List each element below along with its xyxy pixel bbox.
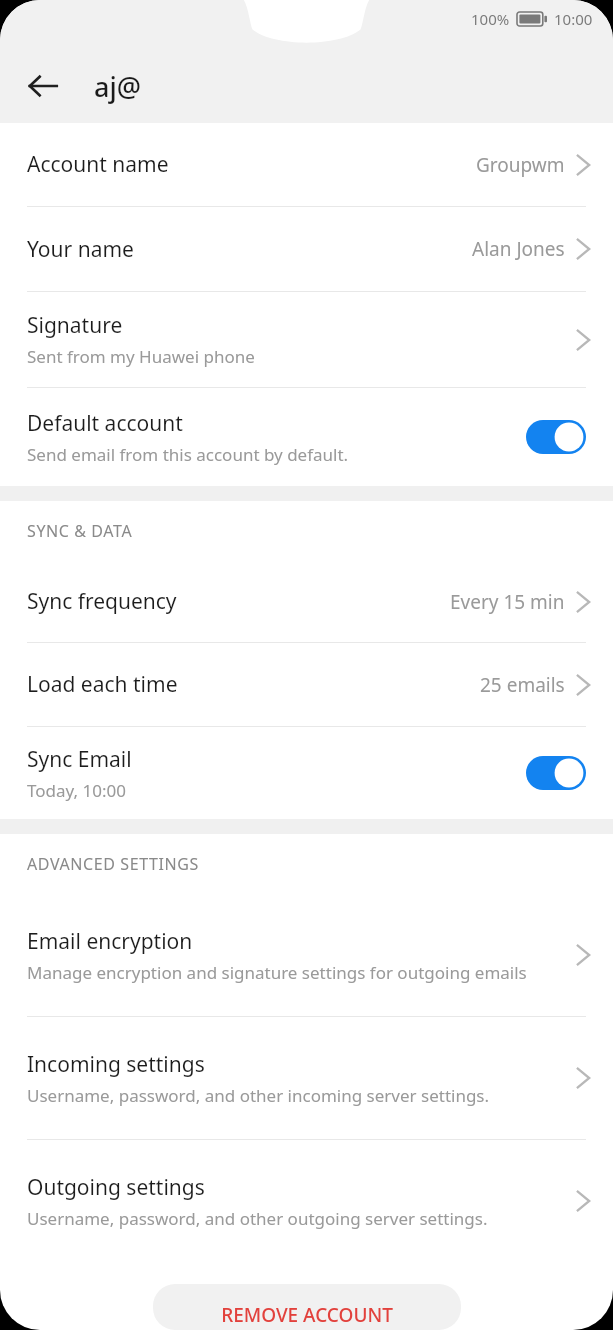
staticText: 100% bbox=[471, 9, 510, 29]
staticText: Signature bbox=[27, 311, 123, 340]
staticText: Groupwm bbox=[476, 152, 565, 178]
button[interactable]: Toggle bbox=[526, 420, 586, 454]
button[interactable]: REMOVE ACCOUNT bbox=[153, 1284, 461, 1330]
staticText: Send email from this account by default. bbox=[27, 443, 349, 466]
button[interactable]: Load each time bbox=[0, 643, 613, 726]
staticText: Email encryption bbox=[27, 927, 193, 956]
staticText: Sent from my Huawei phone bbox=[27, 345, 255, 368]
button[interactable]: Your name bbox=[0, 207, 613, 291]
button[interactable]: Outgoing settings bbox=[0, 1140, 613, 1262]
staticText: 10:00 bbox=[554, 9, 593, 29]
staticText: Incoming settings bbox=[27, 1050, 205, 1079]
staticText: Your name bbox=[27, 235, 134, 264]
button[interactable]: Toggle bbox=[526, 756, 586, 790]
staticText: Account name bbox=[27, 150, 169, 179]
staticText: Today, 10:00 bbox=[27, 779, 126, 802]
staticText: Alan Jones bbox=[472, 236, 565, 262]
staticText: REMOVE ACCOUNT bbox=[221, 1302, 393, 1328]
button[interactable]: Default account bbox=[0, 388, 613, 486]
button[interactable]: Sync Email bbox=[0, 727, 613, 819]
staticText: Sync Email bbox=[27, 745, 132, 774]
staticText: Username, password, and other incoming s… bbox=[27, 1084, 490, 1107]
button[interactable]: Sync frequency bbox=[0, 561, 613, 642]
button[interactable]: Signature bbox=[0, 292, 613, 387]
staticText: Outgoing settings bbox=[27, 1173, 205, 1202]
staticText: Manage encryption and signature settings… bbox=[27, 961, 527, 984]
staticText: Sync frequency bbox=[27, 587, 177, 616]
button[interactable]: Account name bbox=[0, 123, 613, 206]
staticText: ADVANCED SETTINGS bbox=[27, 853, 199, 875]
button[interactable]: Back bbox=[18, 61, 68, 111]
staticText: aj@ bbox=[94, 68, 142, 105]
staticText: SYNC & DATA bbox=[27, 520, 133, 542]
staticText: Load each time bbox=[27, 670, 178, 699]
button[interactable]: Email encryption bbox=[0, 894, 613, 1016]
staticText: 25 emails bbox=[480, 672, 565, 698]
staticText: Default account bbox=[27, 409, 183, 438]
staticText: Username, password, and other outgoing s… bbox=[27, 1207, 488, 1230]
staticText: Every 15 min bbox=[450, 589, 565, 615]
button[interactable]: Incoming settings bbox=[0, 1017, 613, 1139]
